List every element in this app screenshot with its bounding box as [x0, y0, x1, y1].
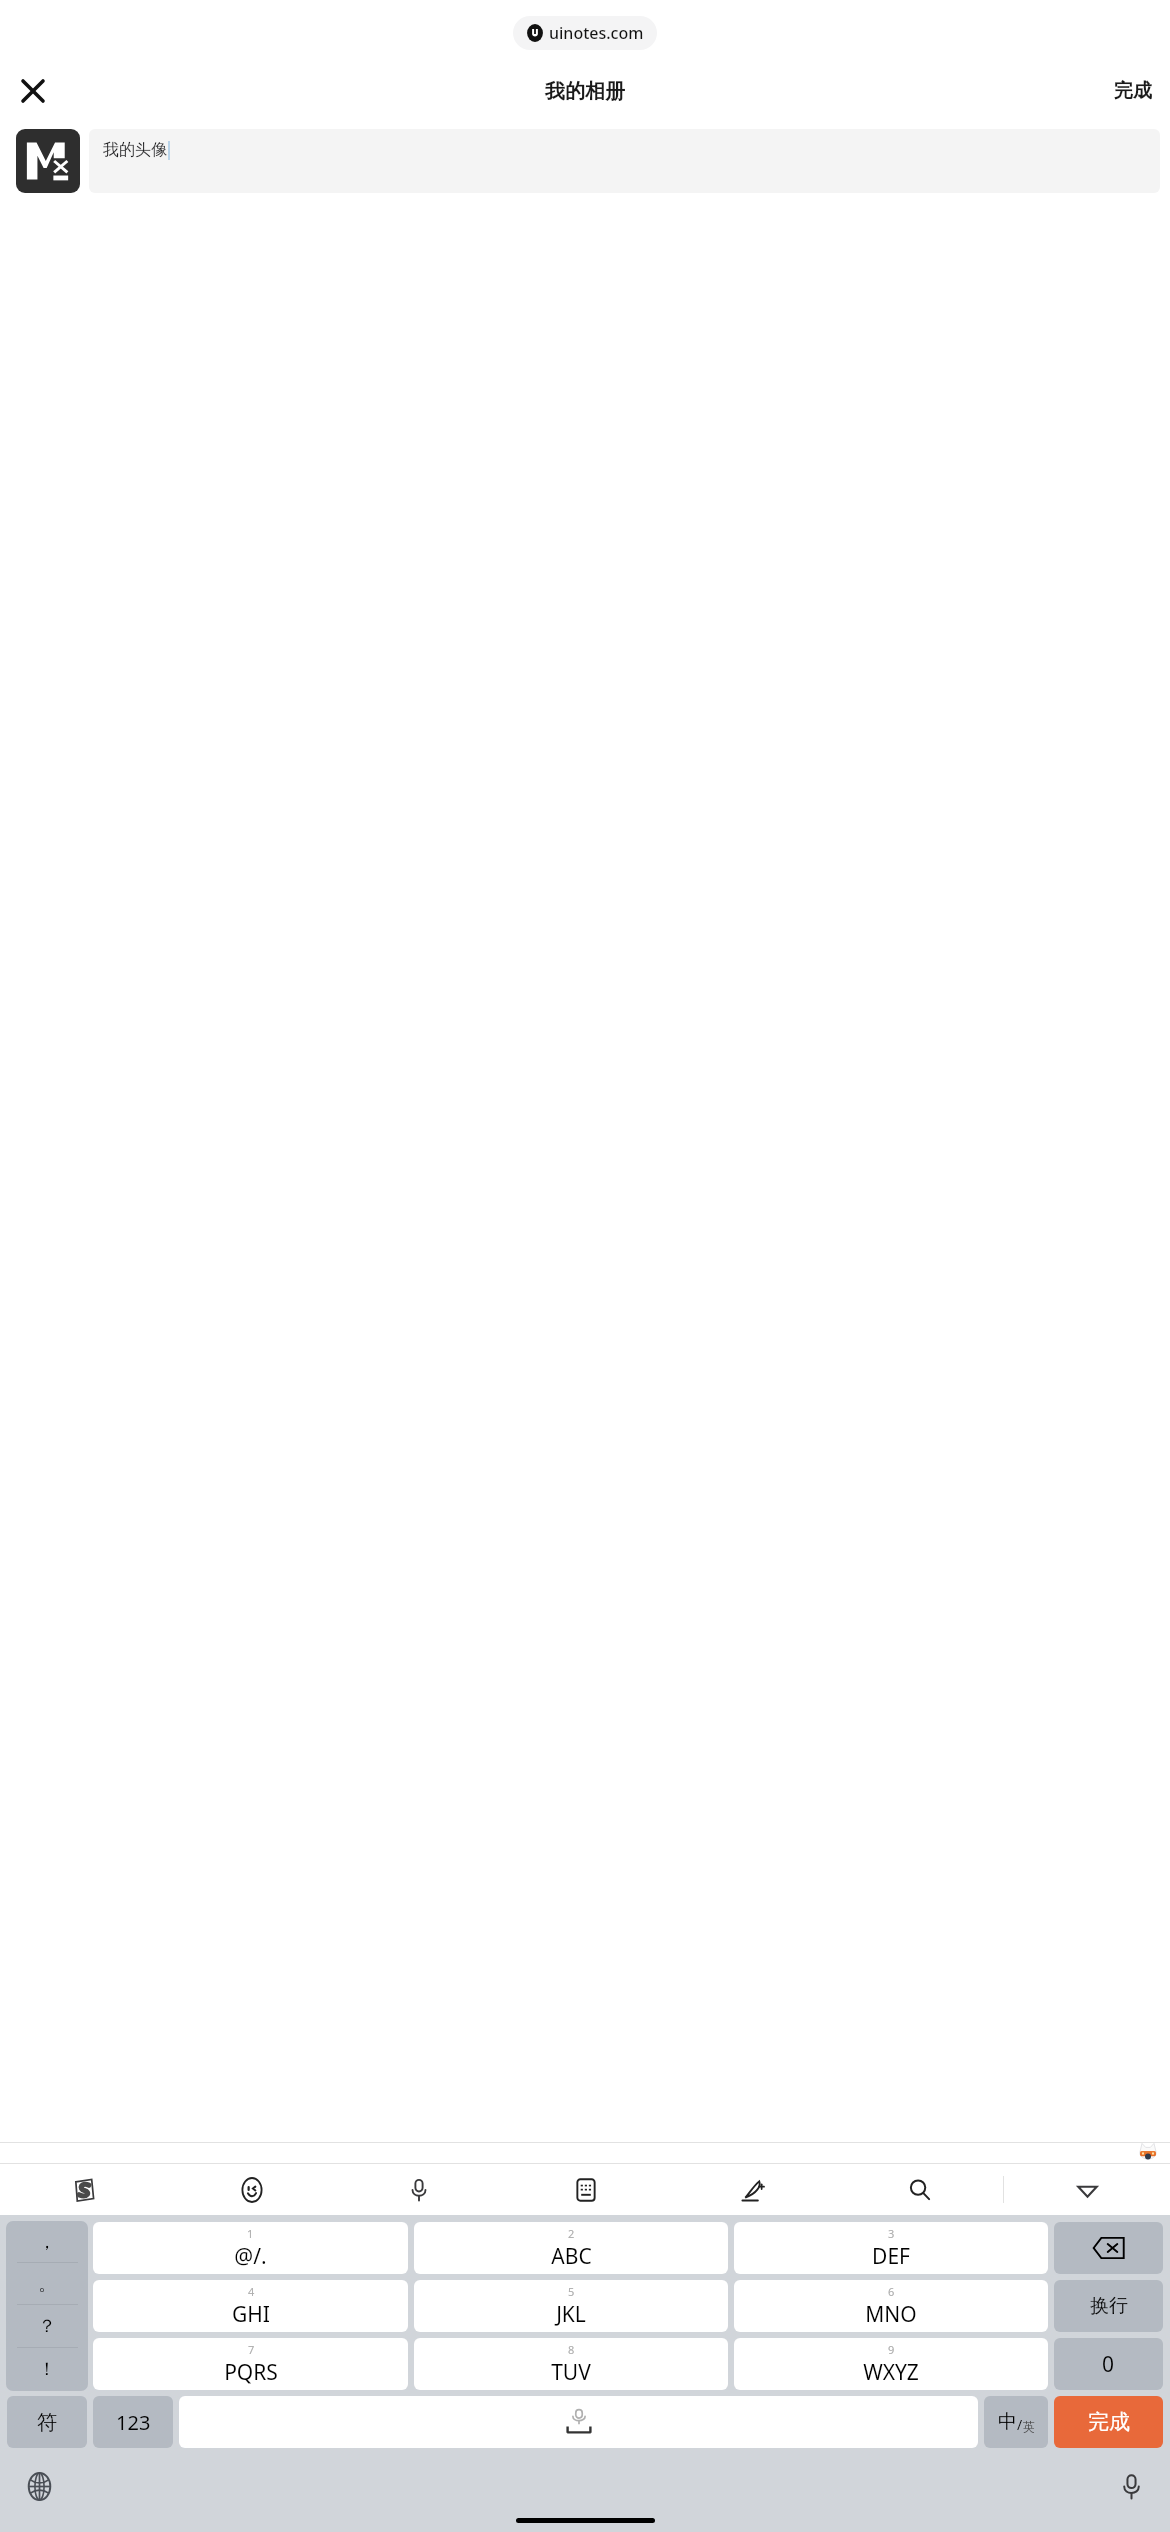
button[interactable]: 8 — [414, 2338, 728, 2390]
button[interactable]: 4 — [93, 2280, 408, 2332]
button[interactable]: Album cover — [16, 129, 80, 193]
staticText: 3 — [888, 2226, 895, 2241]
staticText: GHI — [232, 2300, 270, 2329]
button[interactable]: 9 — [734, 2338, 1048, 2390]
staticText: 完成 — [1088, 2409, 1130, 2435]
button[interactable]: Chinese English toggle — [984, 2396, 1048, 2448]
staticText: JKL — [556, 2300, 586, 2329]
button[interactable]: 1 — [93, 2222, 408, 2274]
staticText: 中 — [998, 2410, 1017, 2434]
staticText: 2 — [568, 2226, 575, 2241]
button[interactable]: 完成 — [1096, 69, 1170, 113]
staticText: 符 — [37, 2410, 57, 2435]
staticText: DEF — [872, 2242, 910, 2271]
staticText: 6 — [888, 2284, 895, 2299]
staticText: 0 — [1102, 2350, 1115, 2379]
button[interactable]: ！ — [6, 2348, 88, 2391]
staticText: 123 — [116, 2409, 151, 2436]
staticText: / — [1017, 2415, 1023, 2434]
staticText: 1 — [247, 2226, 254, 2241]
staticText: ABC — [551, 2242, 592, 2271]
staticText: 4 — [248, 2284, 255, 2299]
staticText: ！ — [38, 2358, 56, 2381]
button[interactable]: 7 — [93, 2338, 408, 2390]
button[interactable]: Keyboard layout — [564, 2168, 608, 2212]
button[interactable]: ？ — [6, 2305, 88, 2348]
button[interactable]: 0 — [1054, 2338, 1163, 2390]
button[interactable]: Close — [10, 68, 56, 114]
button[interactable]: 3 — [734, 2222, 1048, 2274]
staticText: 英 — [1023, 2419, 1035, 2434]
button[interactable]: Space — [179, 2396, 978, 2448]
staticText: uinotes.com — [549, 22, 644, 44]
button[interactable]: 。 — [6, 2263, 88, 2305]
button[interactable]: ， — [6, 2221, 88, 2263]
button[interactable]: Emoji — [230, 2168, 274, 2212]
staticText: 我的相册 — [545, 79, 625, 104]
button[interactable]: Sogou mascot — [1138, 2143, 1158, 2163]
staticText: 我的头像 — [103, 140, 167, 160]
staticText: PQRS — [224, 2358, 278, 2387]
button[interactable]: Hide keyboard — [1065, 2168, 1109, 2212]
staticText: 9 — [888, 2342, 895, 2357]
button[interactable]: 换行 — [1054, 2280, 1163, 2332]
button[interactable]: Sogou keyboard — [62, 2168, 106, 2212]
button[interactable]: Switch language — [14, 2461, 64, 2511]
button[interactable]: 123 — [93, 2396, 173, 2448]
button[interactable]: Handwriting — [731, 2168, 775, 2212]
button[interactable]: 完成 — [1054, 2396, 1163, 2448]
staticText: ， — [38, 2231, 56, 2254]
button[interactable]: Voice input — [397, 2168, 441, 2212]
button[interactable]: 6 — [734, 2280, 1048, 2332]
button[interactable]: Delete — [1054, 2222, 1163, 2274]
staticText: @/. — [234, 2242, 267, 2271]
button[interactable]: Dictation — [1106, 2461, 1156, 2511]
staticText: TUV — [551, 2358, 591, 2387]
staticText: ？ — [38, 2315, 56, 2338]
button[interactable]: Search — [898, 2168, 942, 2212]
staticText: 8 — [568, 2342, 575, 2357]
button[interactable]: 5 — [414, 2280, 728, 2332]
button[interactable]: 符 — [7, 2396, 87, 2448]
staticText: 换行 — [1090, 2294, 1128, 2318]
button[interactable]: 我的头像 — [89, 129, 1160, 193]
staticText: 完成 — [1114, 79, 1152, 103]
button[interactable]: 2 — [414, 2222, 728, 2274]
staticText: WXYZ — [863, 2358, 919, 2387]
staticText: 。 — [38, 2273, 56, 2296]
staticText: 7 — [248, 2342, 255, 2357]
staticText: MNO — [865, 2300, 917, 2329]
staticText: 5 — [568, 2284, 575, 2299]
